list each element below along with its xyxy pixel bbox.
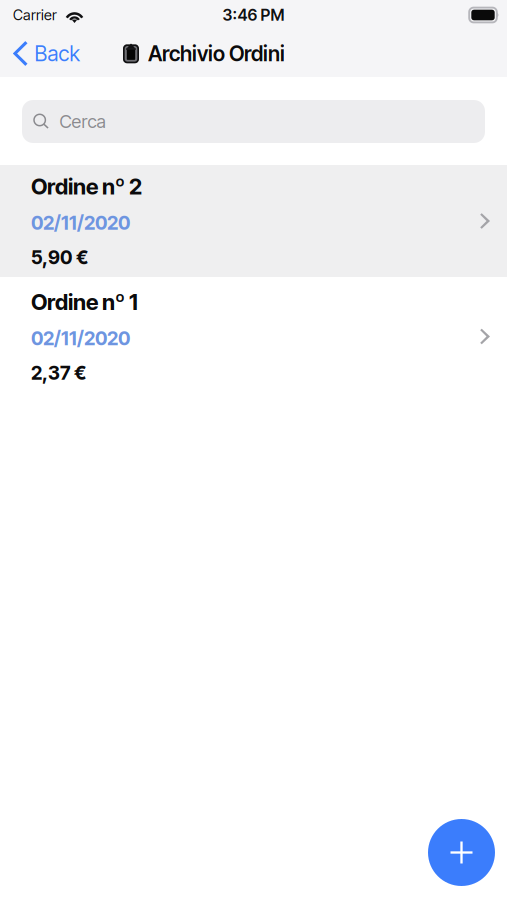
button[interactable]: Cerca	[22, 100, 485, 143]
staticText: Archivio Ordini	[148, 41, 285, 66]
staticText: Ordine nº 1	[31, 289, 138, 315]
button[interactable]: Ordine nº 2	[0, 165, 507, 277]
staticText: 02/11/2020	[31, 327, 130, 350]
staticText: 5,90 €	[31, 246, 88, 269]
staticText: Cerca	[60, 111, 106, 132]
staticText: Back	[34, 41, 79, 66]
button[interactable]: Back	[0, 30, 91, 77]
button[interactable]: Nuovo ordine	[428, 819, 495, 886]
staticText: 2,37 €	[31, 361, 86, 384]
staticText: 3:46 PM	[222, 5, 284, 25]
staticText: Carrier	[13, 6, 57, 24]
staticText: Ordine nº 2	[31, 173, 142, 200]
button[interactable]: Ordine nº 1	[0, 280, 507, 392]
staticText: 02/11/2020	[31, 211, 130, 234]
